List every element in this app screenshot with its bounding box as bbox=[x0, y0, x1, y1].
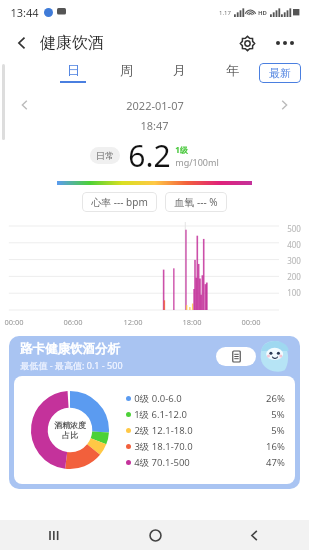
staticText: 占比 bbox=[62, 430, 78, 440]
button[interactable]: 路卡健康饮酒分析 bbox=[9, 336, 300, 489]
staticText: 500 bbox=[287, 223, 301, 234]
staticText: 健康饮酒 bbox=[40, 33, 104, 53]
button[interactable]: Report bbox=[216, 347, 256, 366]
staticText: 4级 70.1-500 bbox=[134, 456, 190, 469]
staticText: 06:00 bbox=[63, 317, 83, 327]
staticText: 周 bbox=[120, 62, 133, 78]
button[interactable]: 1级 6.1-12.0 bbox=[126, 406, 285, 422]
staticText: 路卡健康饮酒分析 bbox=[20, 341, 120, 357]
button[interactable]: More options bbox=[271, 29, 299, 57]
staticText: 6.2 bbox=[128, 135, 171, 176]
staticText: 12:00 bbox=[123, 317, 143, 327]
staticText: 18:47 bbox=[140, 118, 169, 133]
staticText: 最新 bbox=[269, 66, 291, 80]
button[interactable]: Back bbox=[8, 29, 36, 57]
staticText: 5% bbox=[271, 424, 285, 437]
staticText: mg/100ml bbox=[175, 156, 219, 168]
button[interactable]: Next day bbox=[273, 94, 295, 116]
button[interactable]: Back bbox=[239, 520, 269, 550]
button[interactable]: Recent apps bbox=[40, 520, 70, 550]
staticText: HD bbox=[258, 9, 267, 17]
staticText: 酒精浓度 bbox=[54, 420, 86, 430]
button[interactable]: 血氧 --- % bbox=[165, 192, 227, 212]
staticText: 47% bbox=[266, 456, 285, 469]
button[interactable]: 年 bbox=[206, 62, 259, 83]
staticText: 日常 bbox=[96, 150, 114, 161]
button[interactable]: Settings bbox=[233, 29, 261, 57]
staticText: 100 bbox=[287, 287, 301, 298]
button[interactable]: 日 bbox=[46, 62, 100, 83]
staticText: 00:00 bbox=[241, 317, 261, 327]
staticText: 月 bbox=[173, 62, 186, 78]
staticText: 0级 0.0-6.0 bbox=[134, 392, 182, 405]
staticText: 400 bbox=[287, 239, 301, 250]
staticText: 00:00 bbox=[4, 317, 24, 327]
button[interactable]: 月 bbox=[153, 62, 206, 83]
staticText: 年 bbox=[226, 62, 239, 78]
button[interactable]: Previous day bbox=[14, 94, 36, 116]
staticText: 13:44 bbox=[10, 5, 39, 20]
button[interactable]: 心率 --- bpm bbox=[82, 192, 157, 212]
button[interactable]: 最新 bbox=[259, 63, 301, 83]
button[interactable]: Home bbox=[140, 520, 170, 550]
staticText: 最低值 - 最高值: 0.1 - 500 bbox=[20, 359, 123, 371]
staticText: 200 bbox=[287, 271, 301, 282]
staticText: 18:00 bbox=[182, 317, 202, 327]
staticText: 26% bbox=[266, 392, 285, 405]
staticText: 16% bbox=[266, 440, 285, 453]
staticText: 2级 12.1-18.0 bbox=[134, 424, 193, 437]
staticText: 2022-01-07 bbox=[126, 98, 184, 113]
staticText: 日 bbox=[67, 62, 80, 78]
button[interactable]: 3级 18.1-70.0 bbox=[126, 438, 285, 454]
button[interactable]: 0级 0.0-6.0 bbox=[126, 390, 285, 406]
button[interactable]: 2级 12.1-18.0 bbox=[126, 422, 285, 438]
staticText: 1.17 bbox=[219, 9, 231, 17]
staticText: 300 bbox=[287, 255, 301, 266]
staticText: 1级 6.1-12.0 bbox=[134, 408, 187, 421]
staticText: 3级 18.1-70.0 bbox=[134, 440, 193, 453]
staticText: 血氧 --- % bbox=[174, 195, 218, 209]
staticText: 心率 --- bpm bbox=[91, 195, 148, 209]
staticText: 5% bbox=[271, 408, 285, 421]
staticText: 1级 bbox=[175, 144, 188, 155]
button[interactable]: 周 bbox=[100, 62, 153, 83]
button[interactable]: 4级 70.1-500 bbox=[126, 454, 285, 470]
